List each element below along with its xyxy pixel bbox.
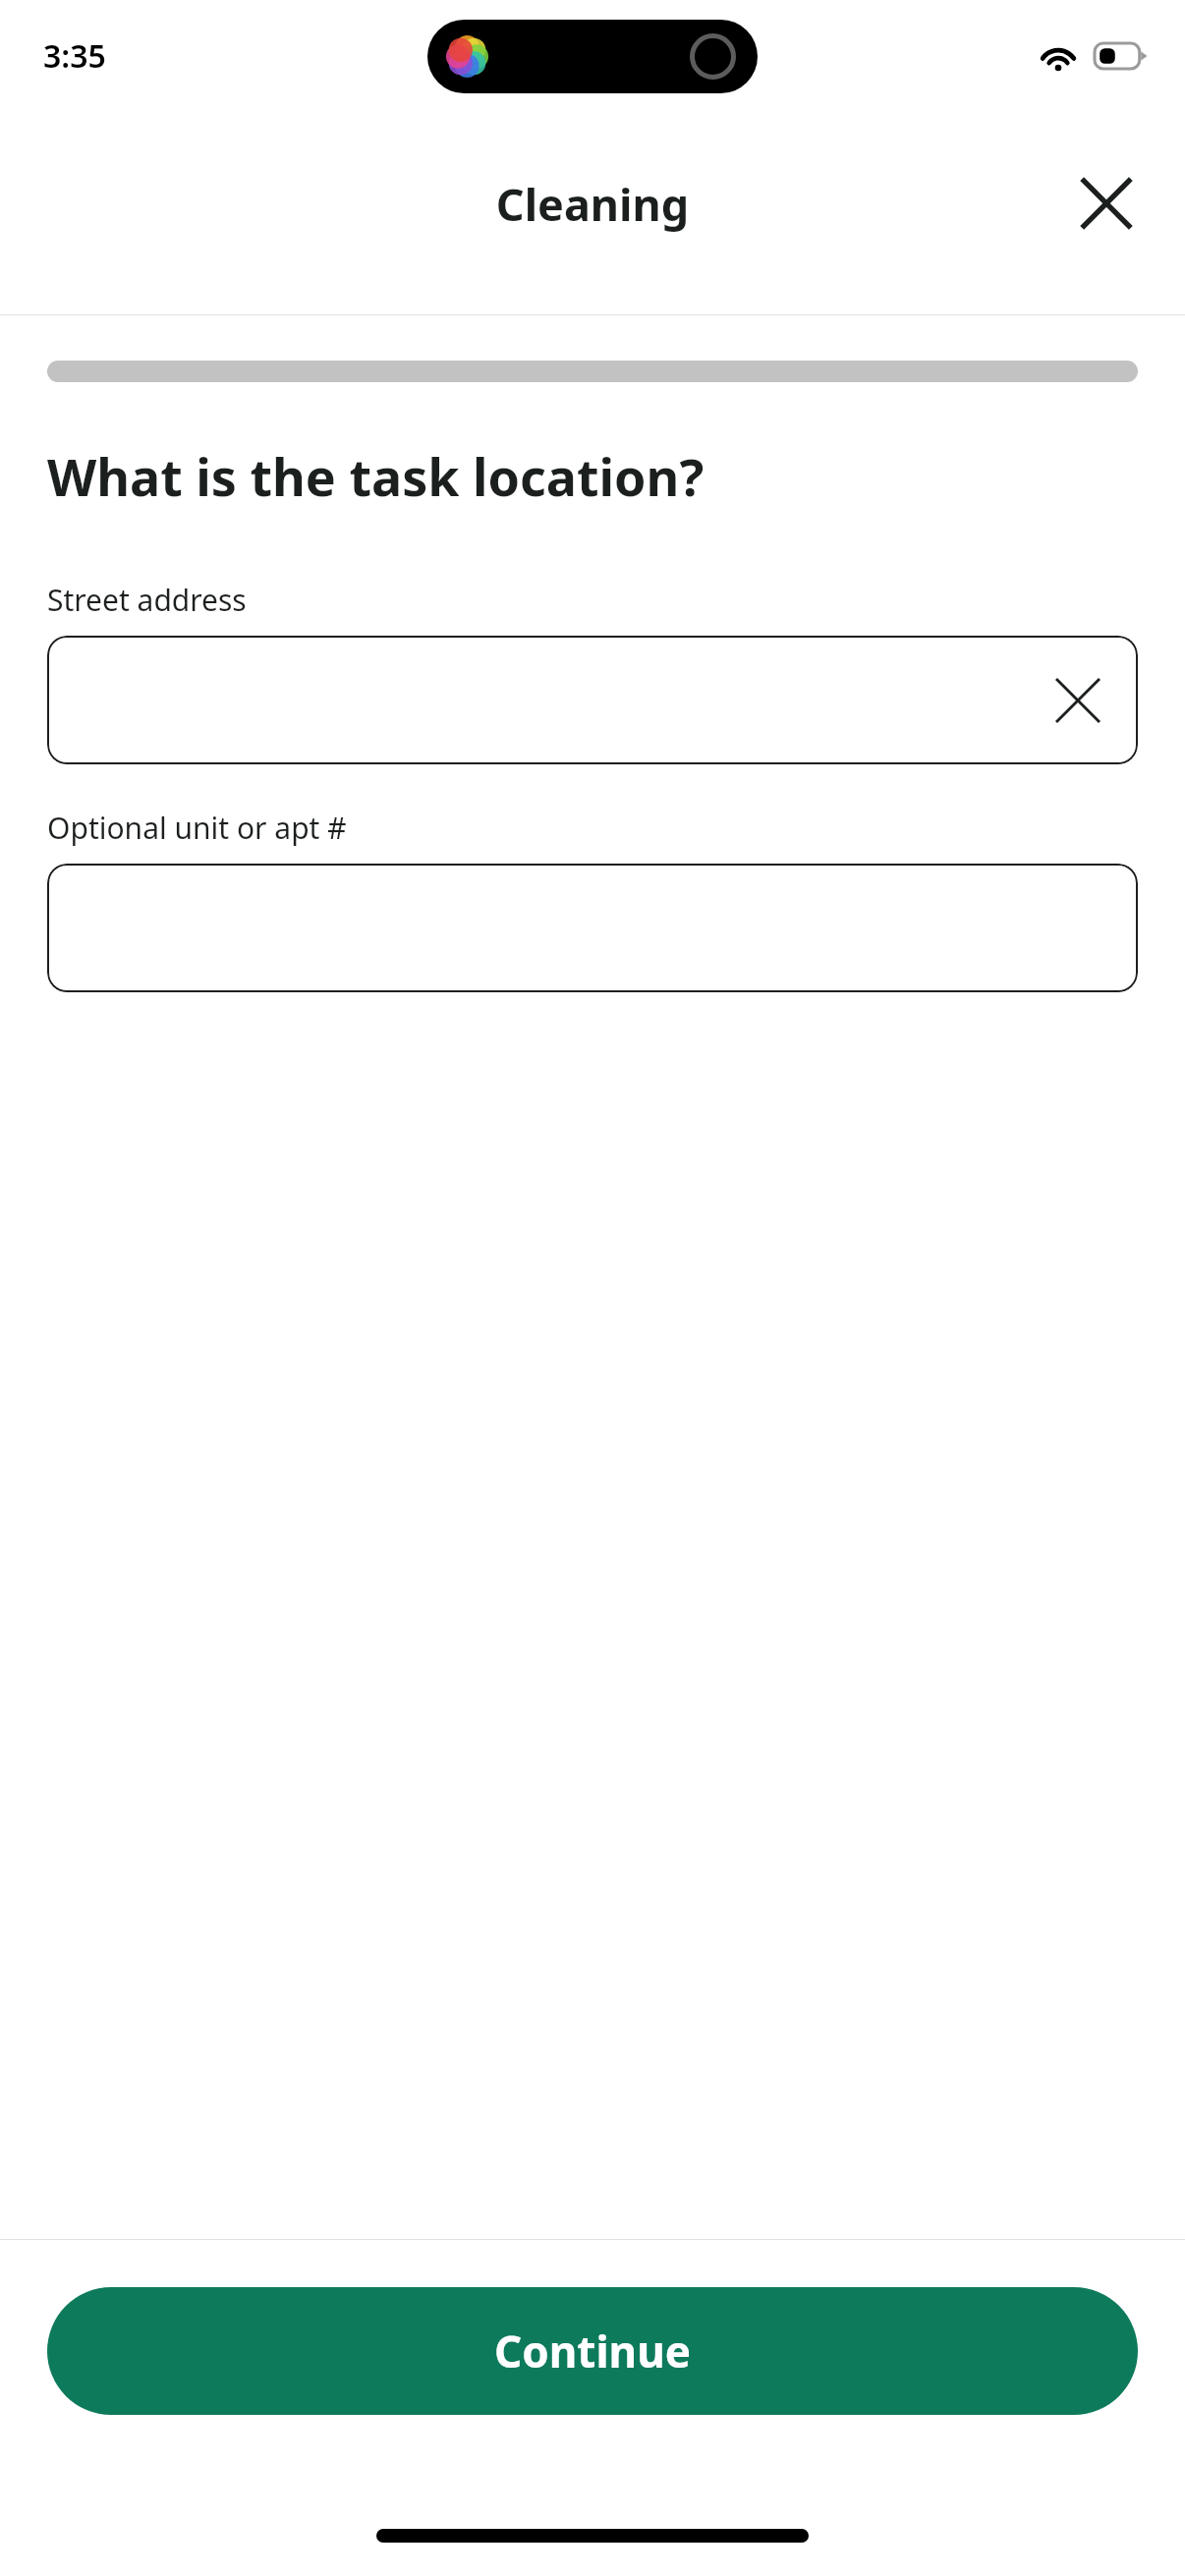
button[interactable]: Close — [1057, 154, 1156, 252]
staticText: Cleaning — [0, 174, 1185, 234]
button[interactable]: Continue — [47, 2287, 1138, 2415]
button[interactable]: Clear text — [47, 636, 1138, 764]
staticText: Continue — [494, 2322, 692, 2380]
staticText: Street address — [47, 580, 247, 620]
staticText: 3:35 — [43, 34, 106, 78]
button[interactable] — [47, 864, 1138, 992]
button[interactable]: Clear text — [1042, 664, 1114, 737]
staticText: Optional unit or apt # — [47, 808, 347, 848]
staticText: What is the task location? — [47, 441, 705, 511]
